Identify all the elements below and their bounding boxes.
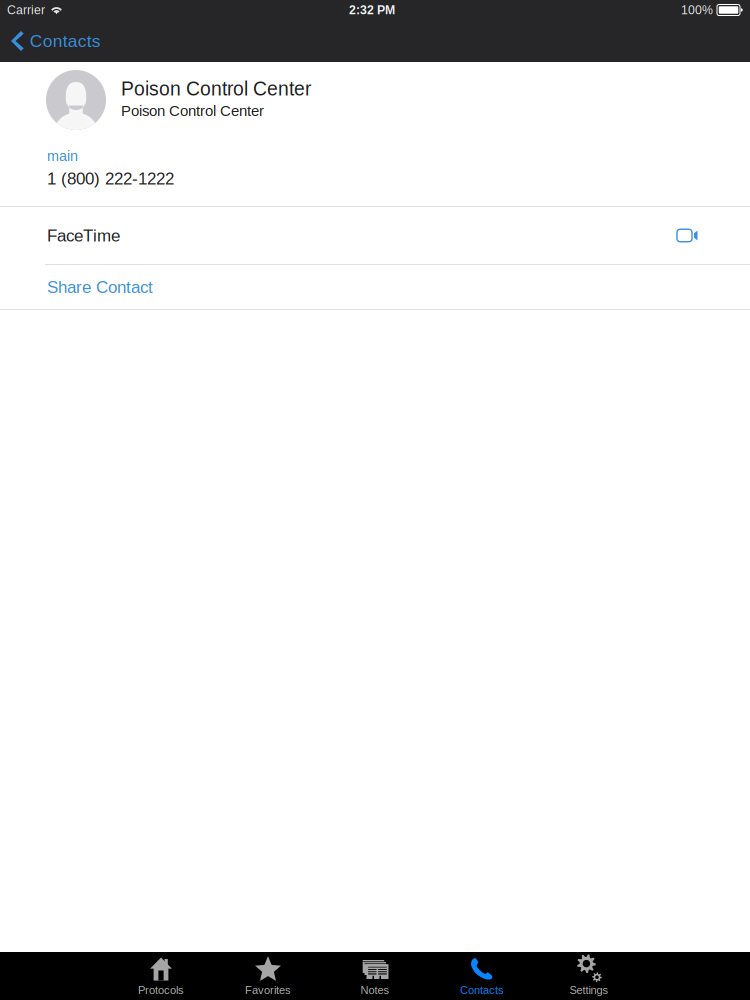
staticText: 100% <box>681 3 713 17</box>
button[interactable]: Contacts <box>428 952 535 1000</box>
staticText: Poison Control Center <box>121 103 264 119</box>
button[interactable]: Notes <box>321 952 428 1000</box>
staticText: Settings <box>569 984 608 996</box>
button[interactable]: Protocols <box>107 952 214 1000</box>
staticText: FaceTime <box>47 226 120 245</box>
staticText: Favorites <box>245 984 291 996</box>
button[interactable]: Contacts <box>0 20 113 62</box>
button[interactable]: Settings <box>535 952 642 1000</box>
staticText: main <box>47 148 78 164</box>
staticText: Protocols <box>138 984 184 996</box>
staticText: Contacts <box>30 31 101 51</box>
button[interactable]: Favorites <box>214 952 321 1000</box>
button[interactable]: Share Contact <box>0 265 750 309</box>
staticText: Notes <box>360 984 389 996</box>
staticText: Share Contact <box>47 277 153 296</box>
button[interactable]: FaceTime <box>0 207 750 264</box>
staticText: 2:32 PM <box>349 3 395 17</box>
staticText: Poison Control Center <box>121 78 311 100</box>
button[interactable]: 1 (800) 222-1222 <box>47 164 174 188</box>
staticText: 1 (800) 222-1222 <box>47 169 174 188</box>
staticText: Contacts <box>460 984 504 996</box>
staticText: Carrier <box>7 3 45 17</box>
